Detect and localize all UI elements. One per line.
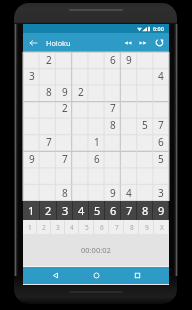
button[interactable] xyxy=(137,150,153,167)
button[interactable]: 9 xyxy=(57,84,73,100)
button[interactable]: 3 xyxy=(153,184,169,201)
button[interactable] xyxy=(153,52,169,68)
button[interactable] xyxy=(57,52,73,68)
button[interactable] xyxy=(73,184,89,201)
button[interactable]: 3 xyxy=(23,68,40,84)
button[interactable] xyxy=(153,100,169,116)
button[interactable]: 9 xyxy=(23,150,40,167)
button[interactable]: 8 xyxy=(124,220,139,234)
button[interactable] xyxy=(137,100,153,116)
button[interactable] xyxy=(57,68,73,84)
button[interactable]: 7 xyxy=(109,220,124,234)
button[interactable] xyxy=(105,167,121,184)
button[interactable] xyxy=(137,133,153,150)
button[interactable]: 6 xyxy=(94,220,109,234)
button[interactable]: 1 xyxy=(89,133,105,150)
button[interactable]: 1 xyxy=(23,201,40,220)
button[interactable]: 4 xyxy=(153,68,169,84)
button[interactable]: 8 xyxy=(57,184,73,201)
button[interactable] xyxy=(89,100,105,116)
button[interactable]: Home xyxy=(76,267,117,284)
button[interactable]: 2 xyxy=(40,201,57,220)
button[interactable] xyxy=(89,116,105,133)
button[interactable]: 3 xyxy=(51,220,65,234)
button[interactable] xyxy=(57,133,73,150)
button[interactable] xyxy=(105,84,121,100)
button[interactable] xyxy=(153,84,169,100)
button[interactable] xyxy=(23,84,40,100)
button[interactable]: Fast forward xyxy=(135,33,150,52)
button[interactable]: 7 xyxy=(153,116,169,133)
button[interactable]: 6 xyxy=(105,201,121,220)
button[interactable] xyxy=(121,68,137,84)
button[interactable]: 4 xyxy=(65,220,79,234)
button[interactable] xyxy=(137,84,153,100)
button[interactable]: 4 xyxy=(73,201,89,220)
button[interactable] xyxy=(121,100,137,116)
button[interactable]: 2 xyxy=(37,220,51,234)
button[interactable]: 7 xyxy=(121,201,137,220)
button[interactable]: X xyxy=(154,220,169,234)
button[interactable] xyxy=(121,116,137,133)
button[interactable]: 6 xyxy=(105,52,121,68)
button[interactable] xyxy=(73,116,89,133)
button[interactable]: Back xyxy=(34,267,76,284)
button[interactable] xyxy=(23,184,40,201)
button[interactable]: 6 xyxy=(89,150,105,167)
button[interactable] xyxy=(23,116,40,133)
button[interactable]: 5 xyxy=(153,150,169,167)
button[interactable] xyxy=(121,167,137,184)
button[interactable] xyxy=(23,100,40,116)
button[interactable] xyxy=(121,133,137,150)
button[interactable] xyxy=(89,68,105,84)
button[interactable] xyxy=(73,68,89,84)
button[interactable]: 7 xyxy=(105,100,121,116)
button[interactable]: Restart xyxy=(150,33,169,52)
button[interactable]: 9 xyxy=(105,184,121,201)
button[interactable] xyxy=(57,167,73,184)
button[interactable] xyxy=(57,116,73,133)
button[interactable] xyxy=(23,167,40,184)
button[interactable] xyxy=(105,150,121,167)
button[interactable] xyxy=(153,167,169,184)
button[interactable] xyxy=(73,133,89,150)
button[interactable] xyxy=(40,150,57,167)
button[interactable]: 5 xyxy=(79,220,94,234)
button[interactable]: 8 xyxy=(137,201,153,220)
button[interactable] xyxy=(137,167,153,184)
button[interactable]: 6 xyxy=(153,133,169,150)
button[interactable]: Rewind xyxy=(120,33,135,52)
button[interactable]: 3 xyxy=(57,201,73,220)
button[interactable]: 2 xyxy=(57,100,73,116)
button[interactable] xyxy=(40,167,57,184)
button[interactable] xyxy=(89,52,105,68)
button[interactable]: 7 xyxy=(40,133,57,150)
button[interactable]: 8 xyxy=(40,84,57,100)
button[interactable]: 2 xyxy=(73,84,89,100)
button[interactable] xyxy=(73,52,89,68)
button[interactable] xyxy=(73,150,89,167)
button[interactable] xyxy=(40,68,57,84)
button[interactable] xyxy=(73,167,89,184)
button[interactable]: 5 xyxy=(137,116,153,133)
button[interactable] xyxy=(23,133,40,150)
button[interactable] xyxy=(137,52,153,68)
button[interactable] xyxy=(23,52,40,68)
button[interactable]: 5 xyxy=(89,201,105,220)
button[interactable] xyxy=(40,116,57,133)
button[interactable] xyxy=(40,100,57,116)
button[interactable]: Navigate up xyxy=(23,33,43,52)
button[interactable] xyxy=(89,167,105,184)
button[interactable]: Recent apps xyxy=(117,267,158,284)
button[interactable]: 8 xyxy=(105,116,121,133)
button[interactable] xyxy=(40,184,57,201)
button[interactable] xyxy=(89,184,105,201)
button[interactable]: 1 xyxy=(23,220,37,234)
button[interactable]: 9 xyxy=(121,52,137,68)
button[interactable] xyxy=(121,150,137,167)
button[interactable]: 9 xyxy=(153,201,169,220)
button[interactable] xyxy=(89,84,105,100)
button[interactable] xyxy=(105,133,121,150)
button[interactable]: 7 xyxy=(57,150,73,167)
button[interactable] xyxy=(137,68,153,84)
